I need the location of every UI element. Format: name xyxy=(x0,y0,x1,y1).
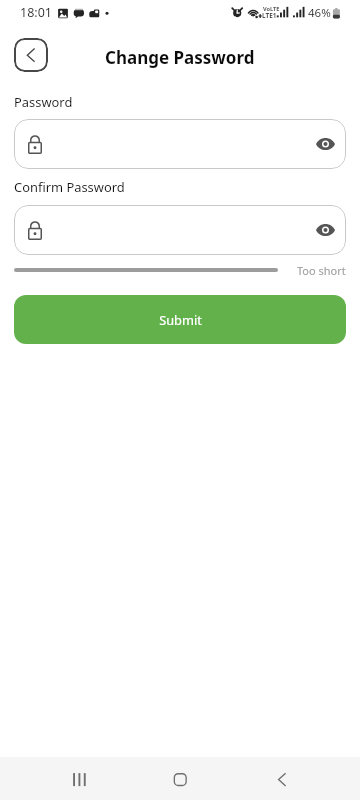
button[interactable]: Show password xyxy=(316,223,335,237)
staticText: Too short xyxy=(297,263,346,278)
button[interactable]: Home xyxy=(160,757,200,800)
button[interactable]: Back xyxy=(262,757,302,800)
button[interactable]: Recent apps xyxy=(60,757,100,800)
staticText: VoLTE xyxy=(263,5,280,13)
staticText: 46% xyxy=(308,5,331,21)
staticText: Confirm Password xyxy=(14,178,125,196)
staticText: LTE1 xyxy=(262,11,277,20)
button[interactable]: Back xyxy=(14,38,48,72)
staticText: Submit xyxy=(159,311,202,328)
staticText: Password xyxy=(14,93,73,111)
button[interactable]: Submit xyxy=(14,295,346,344)
button[interactable]: Show password xyxy=(316,137,335,151)
button[interactable]: Show password xyxy=(14,205,346,255)
staticText: 18:01 xyxy=(20,4,52,21)
staticText: Change Password xyxy=(105,46,255,69)
button[interactable]: Show password xyxy=(14,119,346,169)
